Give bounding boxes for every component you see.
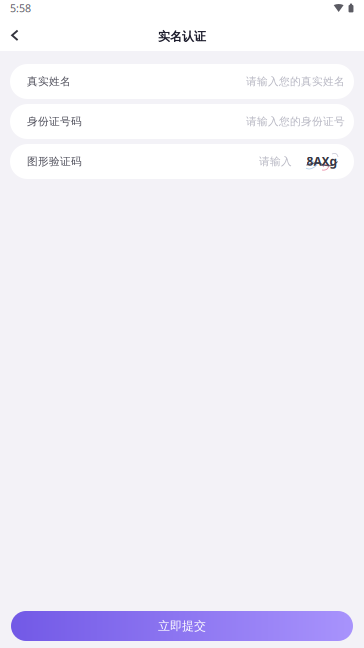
staticText: 立即提交 — [158, 619, 206, 633]
staticText: 请输入您的身份证号 — [246, 115, 345, 128]
button[interactable]: 图形验证码 — [10, 144, 354, 179]
button[interactable]: 立即提交 — [11, 611, 353, 641]
button[interactable]: Back — [0, 18, 30, 48]
staticText: 真实姓名 — [27, 75, 71, 88]
staticText: 实名认证 — [158, 29, 206, 44]
staticText: 请输入您的真实姓名 — [246, 75, 345, 88]
staticText: 身份证号码 — [27, 115, 82, 128]
staticText: 请输入 — [259, 155, 292, 168]
staticText: 图形验证码 — [27, 155, 82, 168]
button[interactable]: 真实姓名 — [10, 64, 354, 99]
staticText: 8AXg — [306, 153, 337, 169]
button[interactable]: 身份证号码 — [10, 104, 354, 139]
staticText: 5:58 — [10, 1, 31, 15]
